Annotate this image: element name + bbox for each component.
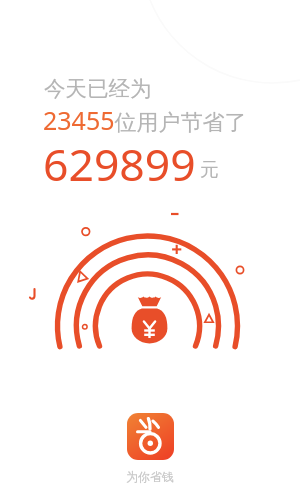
staticText: 为你省钱	[126, 469, 174, 484]
button[interactable]: 省 app icon	[127, 413, 174, 460]
staticText: 元	[200, 158, 219, 181]
staticText: 23455位用户节省了	[43, 103, 247, 137]
staticText: 629899	[43, 133, 196, 194]
staticText: 今天已经为	[44, 75, 152, 102]
